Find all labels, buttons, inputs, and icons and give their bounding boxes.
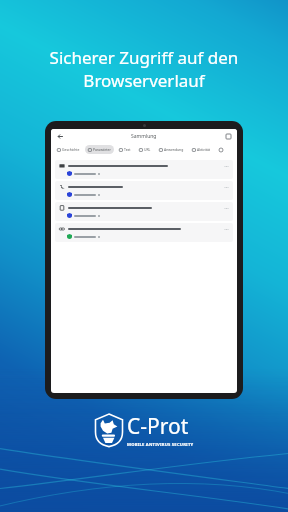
- button[interactable]: URL: [136, 145, 154, 154]
- button[interactable]: [55, 223, 233, 242]
- button[interactable]: Filter: [216, 145, 225, 154]
- button[interactable]: Geschichte: [54, 145, 83, 154]
- staticText: MOBILE ANTIVIRUS SECURITY: [127, 442, 194, 448]
- staticText: URL: [144, 147, 151, 152]
- button[interactable]: Anwendung: [156, 145, 187, 154]
- button[interactable]: [55, 202, 233, 221]
- button[interactable]: Text: [116, 145, 134, 154]
- button[interactable]: Aktivität: [189, 145, 214, 154]
- staticText: Passwörter: [93, 147, 111, 152]
- button[interactable]: Passwörter: [85, 145, 114, 154]
- staticText: Sicherer Zugriff auf den Browserverlauf: [12, 46, 276, 92]
- staticText: Geschichte: [62, 147, 80, 152]
- button[interactable]: [55, 181, 233, 200]
- button[interactable]: Back: [56, 132, 65, 141]
- staticText: Sammlung: [131, 133, 157, 140]
- staticText: C-Prot: [127, 412, 189, 441]
- button[interactable]: [55, 160, 233, 179]
- staticText: Anwendung: [164, 147, 184, 152]
- staticText: Aktivität: [197, 147, 211, 152]
- staticText: Text: [124, 147, 131, 152]
- button[interactable]: More options: [225, 133, 232, 140]
